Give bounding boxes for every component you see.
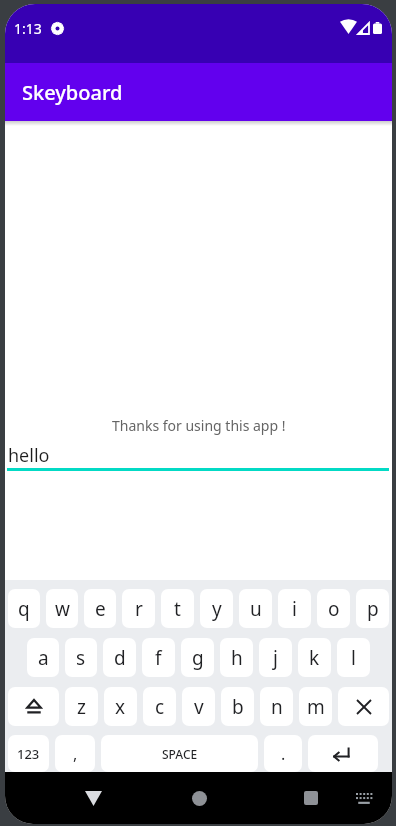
button[interactable]: t [161,589,194,628]
staticText: Thanks for using this app ! [112,416,286,435]
button[interactable]: o [317,589,350,628]
staticText: d [114,645,126,671]
staticText: l [351,645,356,671]
button[interactable]: g [181,638,214,677]
button[interactable] [338,687,389,726]
staticText: 123 [17,745,40,763]
staticText: e [95,596,106,622]
button[interactable]: a [27,638,59,677]
staticText: s [76,645,86,671]
button[interactable] [8,687,59,726]
staticText: Skeyboard [22,79,123,106]
button[interactable]: w [46,589,78,628]
staticText: a [38,645,49,671]
staticText: v [194,694,204,720]
staticText: m [307,694,325,720]
staticText: i [292,596,297,622]
button[interactable]: z [65,687,98,726]
button[interactable] [355,792,373,805]
button[interactable]: , [55,735,95,772]
staticText: o [328,596,340,622]
staticText: j [273,645,278,671]
staticText: w [55,596,70,622]
staticText: . [281,743,286,765]
staticText: 1:13 [14,19,42,38]
staticText: r [135,596,143,622]
staticText: z [77,694,86,720]
staticText: h [231,645,243,671]
staticText: q [18,596,30,622]
button[interactable]: s [65,638,97,677]
staticText: f [155,645,162,671]
button[interactable]: u [239,589,272,628]
button[interactable] [304,791,318,805]
button[interactable]: x [104,687,137,726]
button[interactable]: b [221,687,254,726]
button[interactable]: h [220,638,253,677]
button[interactable]: j [259,638,292,677]
button[interactable] [85,791,102,806]
button[interactable]: r [122,589,155,628]
staticText: p [367,596,379,622]
button[interactable]: c [143,687,176,726]
button[interactable]: l [337,638,370,677]
button[interactable]: Skeyboard [5,63,392,121]
button[interactable]: f [142,638,175,677]
staticText: g [192,645,204,671]
staticText: x [115,694,126,720]
button[interactable]: q [8,589,40,628]
staticText: SPACE [162,746,198,762]
staticText: k [309,645,320,671]
button[interactable]: k [298,638,331,677]
button[interactable]: e [84,589,116,628]
staticText: , [73,743,78,765]
staticText: c [155,694,165,720]
button[interactable]: m [299,687,332,726]
button[interactable]: y [200,589,233,628]
button[interactable] [308,735,378,772]
staticText: b [232,694,244,720]
staticText: n [271,694,283,720]
staticText: hello [8,443,50,468]
staticText: u [250,596,262,622]
button[interactable]: . [264,735,302,772]
button[interactable]: hello [8,443,50,468]
staticText: y [212,596,222,622]
button[interactable]: p [356,589,389,628]
button[interactable]: i [278,589,311,628]
button[interactable]: d [103,638,136,677]
staticText: t [174,596,181,622]
button[interactable]: SPACE [101,735,258,772]
button[interactable] [192,791,207,806]
button[interactable]: v [182,687,215,726]
button[interactable]: n [260,687,293,726]
button[interactable]: 123 [8,735,49,772]
